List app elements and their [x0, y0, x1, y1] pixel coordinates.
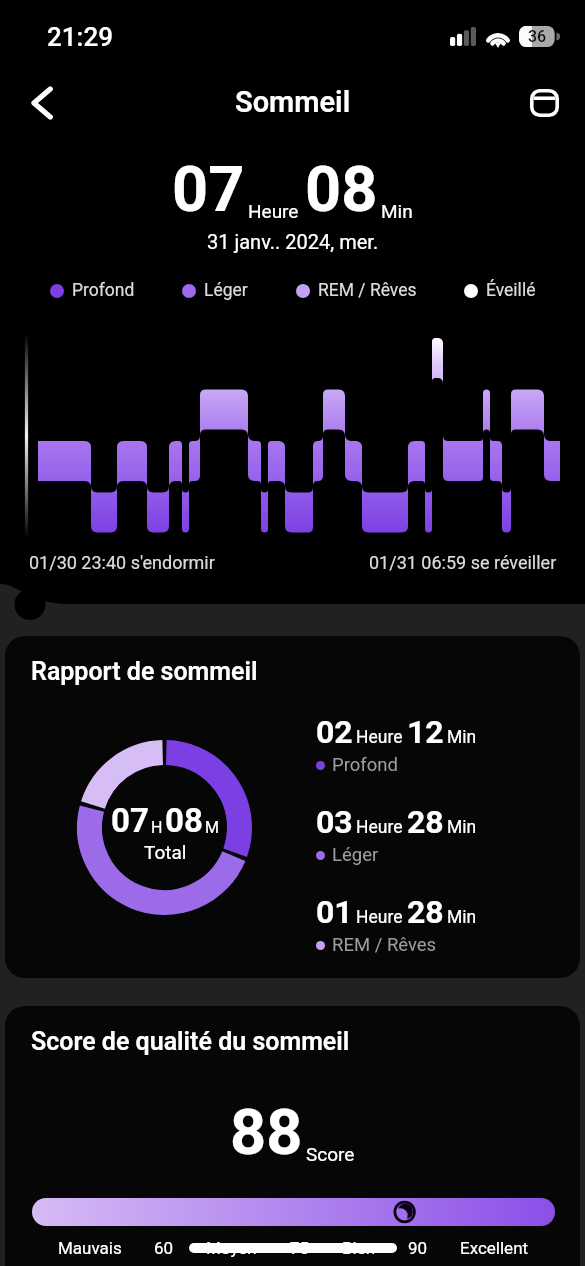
staticText: 60	[154, 1238, 174, 1258]
staticText: 36	[528, 27, 547, 46]
staticText: 07	[172, 153, 245, 227]
staticText: 07	[111, 801, 149, 840]
staticText: 01/30 23:40 s'endormir	[29, 552, 215, 573]
button[interactable]: Back	[12, 74, 70, 132]
staticText: Total	[144, 841, 187, 863]
staticText: Heure	[356, 817, 403, 838]
staticText: H	[151, 818, 163, 837]
staticText: 01/31 06:59 se réveiller	[369, 552, 557, 573]
staticText: Léger	[332, 844, 379, 866]
staticText: 28	[407, 893, 444, 931]
button[interactable]: Rapport de sommeil	[5, 636, 580, 978]
staticText: 02	[316, 713, 353, 751]
staticText: REM / Rêves	[332, 934, 437, 956]
staticText: Profond	[332, 754, 398, 776]
staticText: 90	[408, 1238, 428, 1258]
staticText: 01	[316, 893, 353, 931]
staticText: Min	[447, 907, 477, 928]
button[interactable]: Change view	[516, 75, 572, 131]
button[interactable]: Score de qualité du sommeil	[5, 1006, 580, 1266]
staticText: Rapport de sommeil	[31, 657, 258, 686]
staticText: REM / Rêves	[318, 280, 417, 301]
staticText: Score de qualité du sommeil	[31, 1027, 350, 1056]
staticText: Sommeil	[235, 85, 351, 119]
staticText: Profond	[72, 280, 135, 301]
staticText: 21:29	[47, 22, 113, 52]
staticText: Heure	[248, 200, 299, 222]
staticText: 12	[407, 713, 444, 751]
staticText: 03	[316, 803, 353, 841]
staticText: Bien	[342, 1238, 376, 1258]
staticText: Heure	[356, 727, 403, 748]
staticText: 88	[230, 1096, 303, 1170]
staticText: Mauvais	[58, 1238, 122, 1258]
staticText: Min	[447, 817, 477, 838]
staticText: 28	[407, 803, 444, 841]
staticText: 08	[305, 153, 378, 227]
staticText: 31 janv.. 2024, mer.	[207, 230, 379, 253]
staticText: 75	[290, 1238, 310, 1258]
staticText: 08	[165, 801, 203, 840]
staticText: Score	[306, 1143, 355, 1165]
staticText: Léger	[204, 280, 248, 301]
staticText: Éveillé	[486, 280, 536, 301]
staticText: Heure	[356, 907, 403, 928]
staticText: Min	[381, 200, 413, 222]
staticText: Excellent	[460, 1238, 529, 1258]
staticText: Min	[447, 727, 477, 748]
staticText: M	[205, 818, 219, 837]
staticText: Moyen	[206, 1238, 257, 1258]
